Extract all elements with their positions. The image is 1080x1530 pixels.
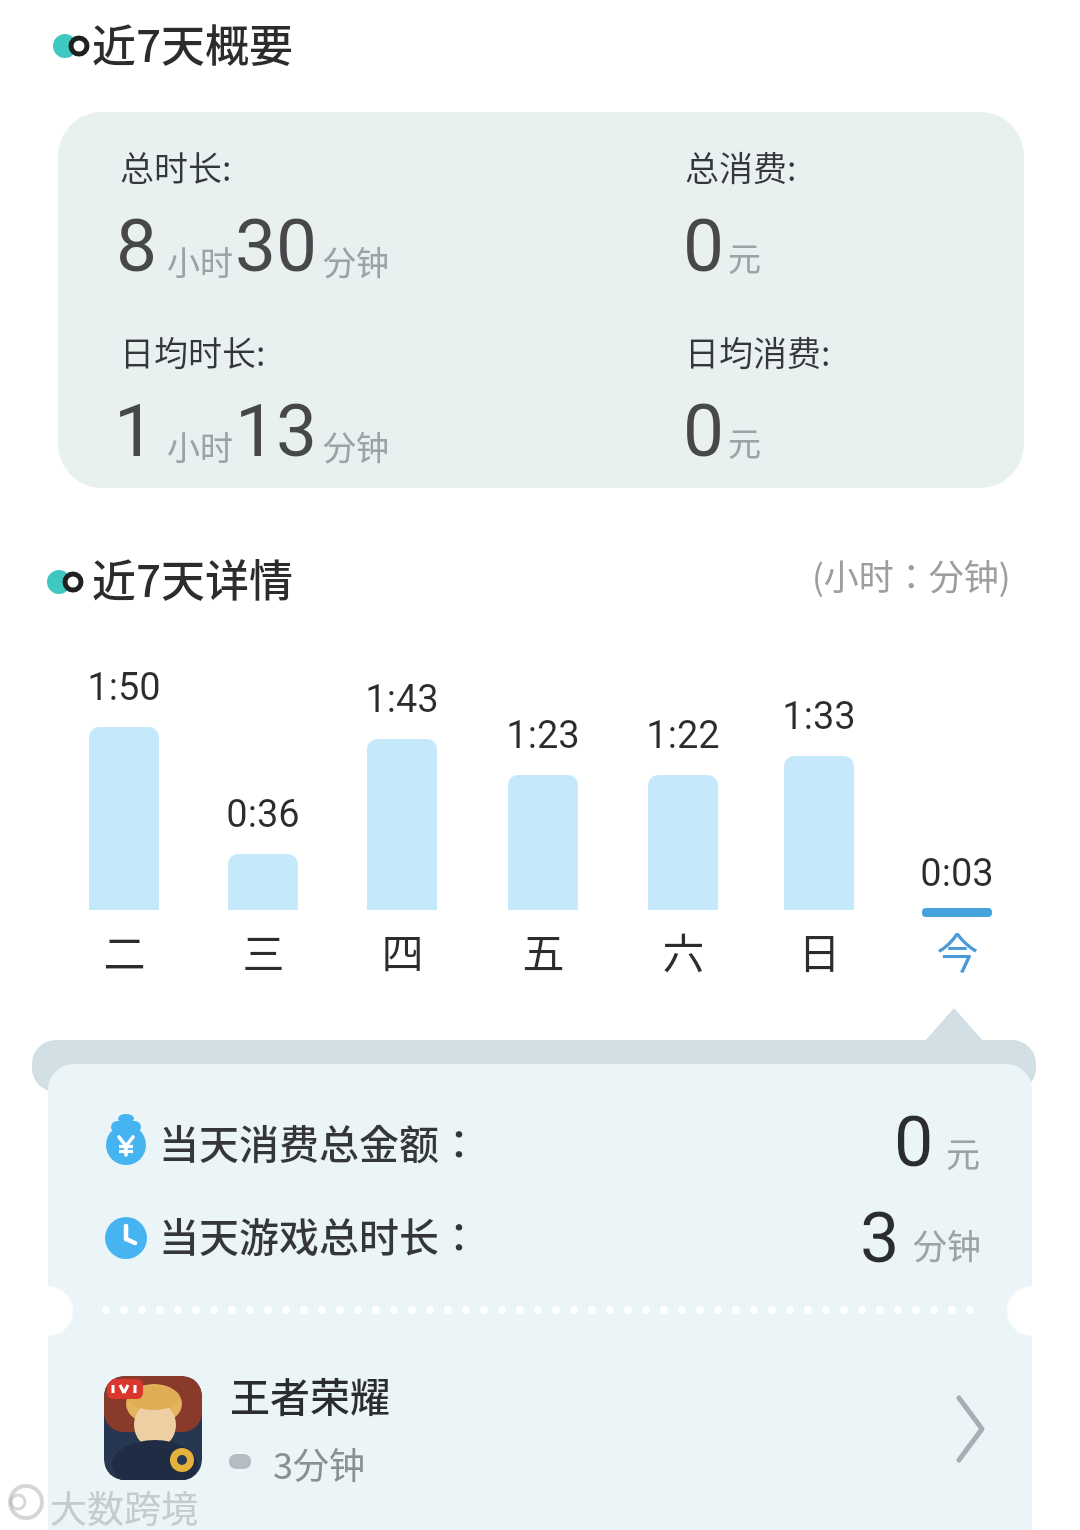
staticText: 30 [235,203,318,289]
staticText: 0 [894,1101,934,1183]
staticText: 1:22 [646,713,720,758]
button[interactable] [48,1064,1032,1530]
staticText: 六 [662,920,705,981]
staticText: 总消费: [685,142,797,191]
staticText: 元 [728,233,761,281]
staticText: 近7天概要 [92,11,294,75]
button[interactable] [104,1376,202,1480]
staticText: 总时长: [120,142,232,191]
staticText: 三 [242,920,285,981]
staticText: 分钟 [913,1220,981,1269]
staticText: 四 [381,920,424,981]
staticText: 小时 [167,237,233,285]
staticText: (小时：分钟) [812,549,1011,600]
staticText: 小时 [167,422,233,470]
staticText: 13 [235,388,318,474]
staticText: 0 [683,203,725,289]
staticText: 二 [103,920,146,981]
staticText: 王者荣耀 [230,1366,390,1424]
staticText: 今 [936,920,979,981]
staticText: 3 [860,1197,900,1279]
staticText: 分钟 [323,422,389,470]
staticText: 8 [116,203,158,289]
staticText: 0 [683,388,725,474]
staticText: 大数跨境 [50,1480,198,1530]
staticText: 1:23 [506,713,580,758]
staticText: 元 [946,1128,980,1177]
staticText: 0:36 [226,792,300,837]
staticText: 五 [522,920,565,981]
staticText: 元 [728,418,761,466]
staticText: 3分钟 [273,1437,365,1489]
staticText: 当天消费总金额： [159,1113,479,1171]
staticText: 1:43 [365,677,439,722]
staticText: 0:03 [920,851,994,896]
staticText: 1 [114,388,156,474]
staticText: 日均消费: [685,327,831,376]
staticText: 1:50 [87,665,161,710]
staticText: 1:33 [782,694,856,739]
button[interactable] [58,112,1024,488]
staticText: 当天游戏总时长： [159,1206,479,1264]
staticText: 分钟 [323,237,389,285]
staticText: 日均时长: [120,327,266,376]
staticText: 日 [798,920,841,981]
staticText: 近7天详情 [92,546,294,610]
